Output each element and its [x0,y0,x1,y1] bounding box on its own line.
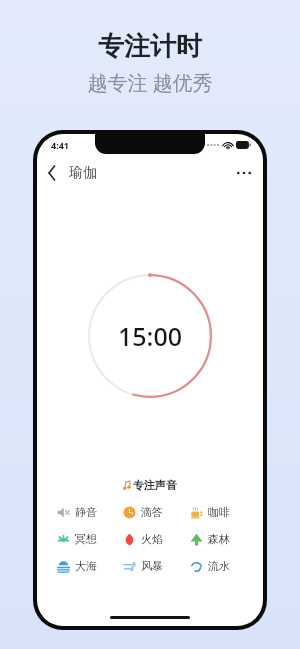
button[interactable]: 咖啡 [183,501,250,523]
staticText: 风暴 [141,559,163,573]
staticText: 森林 [208,532,230,546]
staticText: 越专注 越优秀 [87,69,213,96]
button[interactable]: More options [225,163,263,183]
button[interactable]: 森林 [183,528,250,550]
staticText: 火焰 [141,532,163,546]
staticText: 冥想 [75,532,97,546]
button[interactable]: 大海 [50,555,116,577]
staticText: 咖啡 [208,505,230,519]
button[interactable]: 火焰 [116,528,183,550]
staticText: 4:41 [51,139,69,151]
button[interactable]: 风暴 [116,555,183,577]
staticText: 专注声音 [133,478,177,492]
staticText: 15:00 [118,319,183,353]
button[interactable]: Back [37,160,62,186]
staticText: 大海 [75,559,97,573]
button[interactable]: 冥想 [50,528,116,550]
staticText: 瑜伽 [69,164,97,182]
button[interactable]: 滴答 [116,501,183,523]
button[interactable]: 流水 [183,555,250,577]
staticText: 专注计时 [98,30,202,63]
staticText: 滴答 [141,505,163,519]
staticText: 静音 [75,505,97,519]
staticText: 流水 [208,559,230,573]
button[interactable]: 静音 [50,501,116,523]
